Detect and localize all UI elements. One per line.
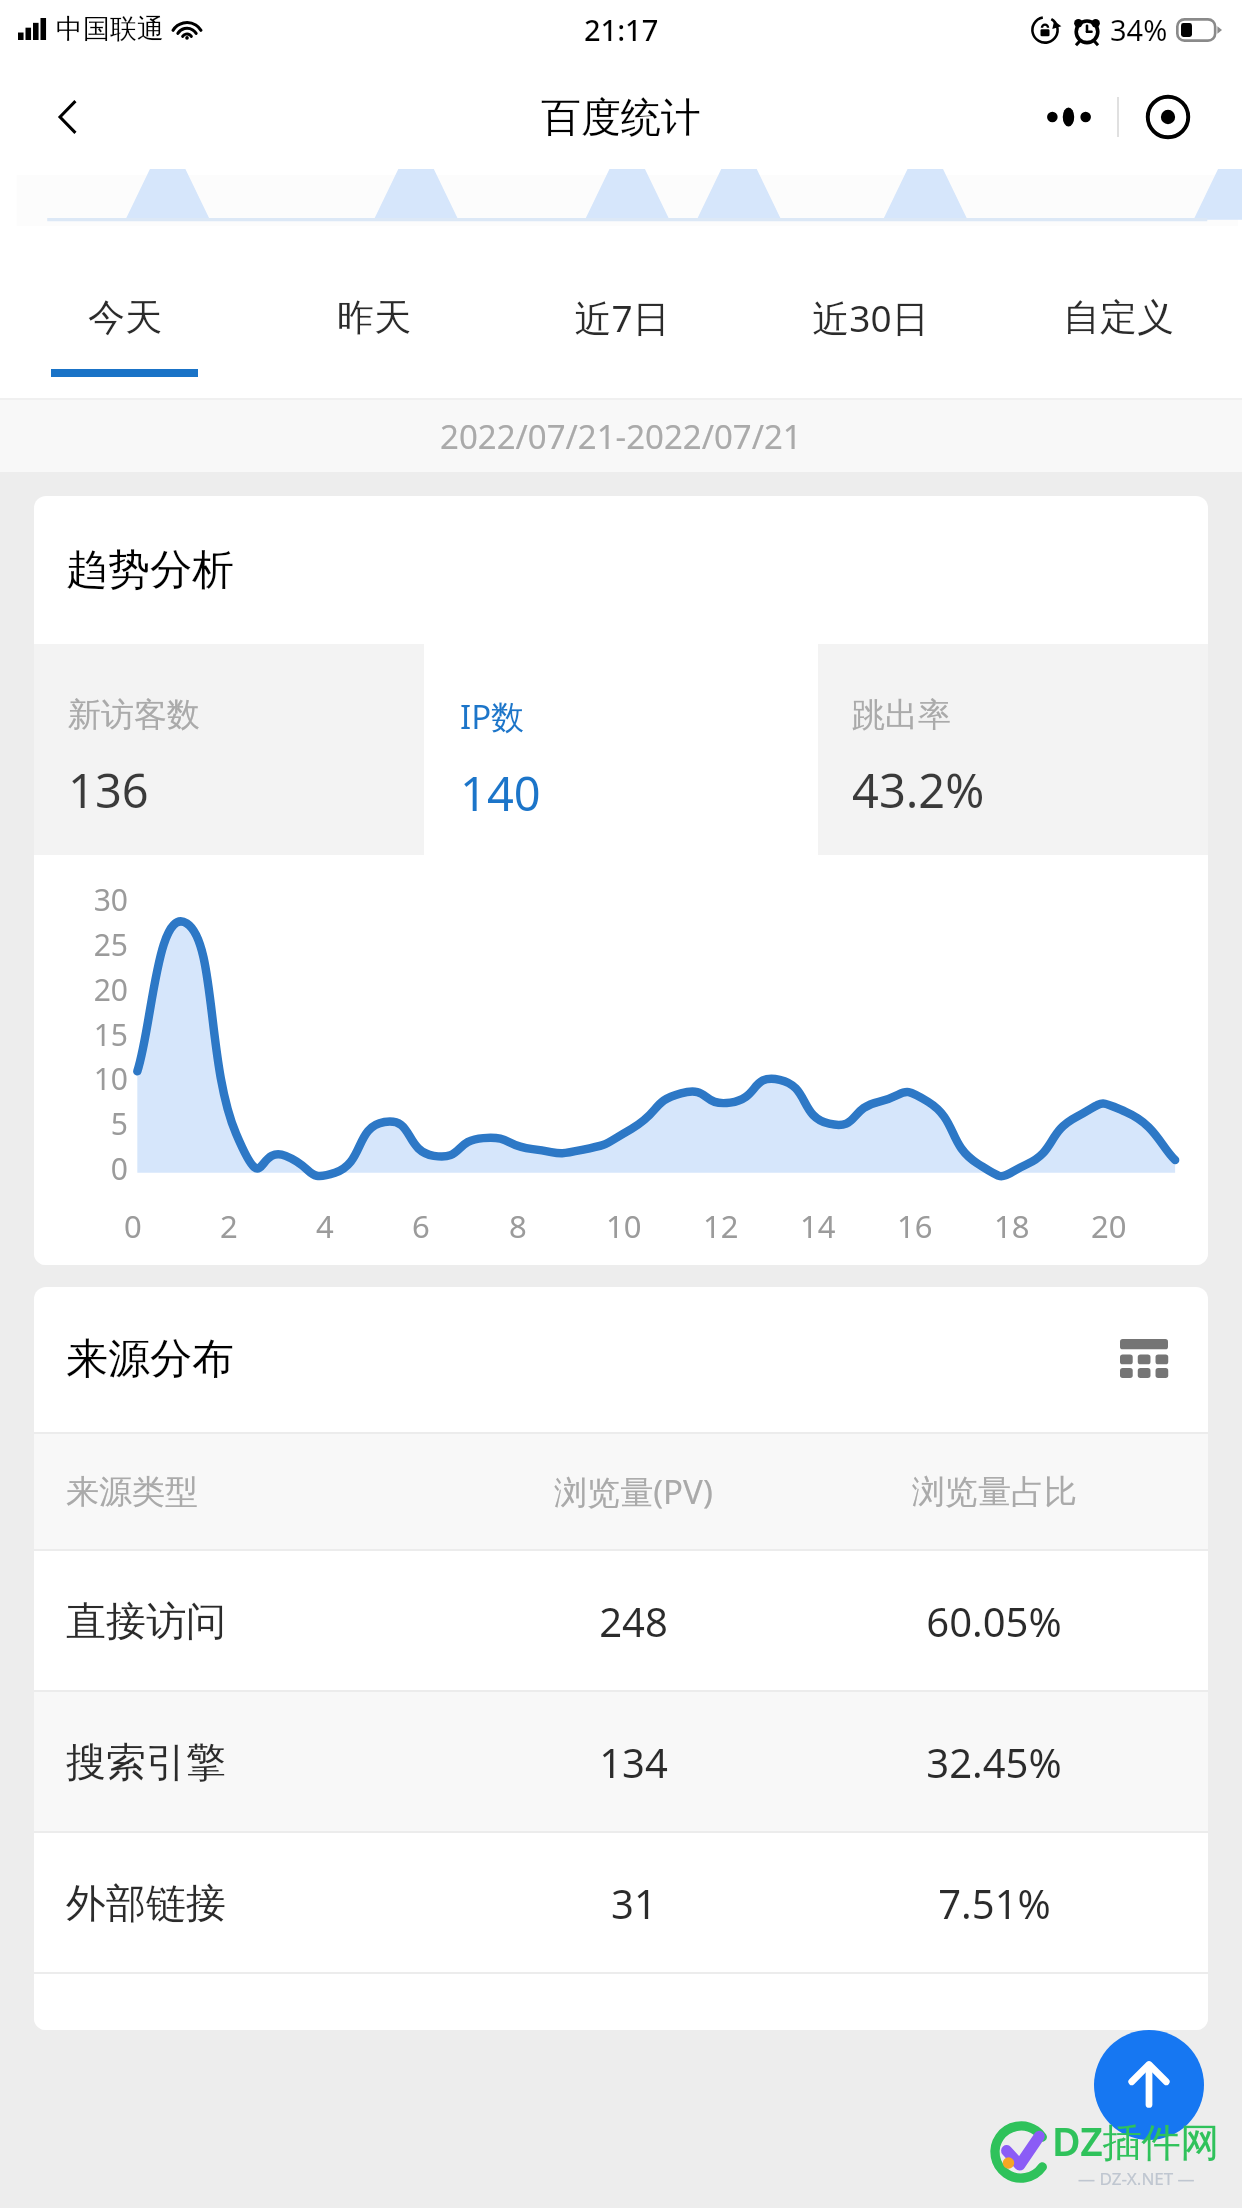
staticText: 5 bbox=[84, 1103, 128, 1144]
staticText: 8 bbox=[509, 1205, 527, 1247]
staticText: 来源分布 bbox=[66, 1333, 234, 1386]
button[interactable]: Close bbox=[1119, 80, 1216, 154]
button[interactable]: 近7日 bbox=[498, 235, 746, 400]
staticText: 中国联通 bbox=[56, 12, 164, 46]
button[interactable]: 新访客数 bbox=[34, 644, 424, 855]
button[interactable]: Scroll to top bbox=[1094, 2030, 1204, 2140]
staticText: 32.45% bbox=[926, 1735, 1062, 1789]
staticText: 外部链接 bbox=[66, 1878, 226, 1928]
staticText: 今天 bbox=[88, 294, 162, 341]
staticText: — DZ-X.NET — bbox=[1078, 2167, 1195, 2190]
button[interactable]: 今天 bbox=[0, 235, 249, 400]
staticText: 30 bbox=[84, 879, 128, 920]
staticText: 25 bbox=[84, 924, 128, 965]
staticText: 自定义 bbox=[1063, 294, 1174, 341]
staticText: 2022/07/21-2022/07/21 bbox=[440, 414, 802, 459]
staticText: 18 bbox=[994, 1205, 1030, 1247]
staticText: 20 bbox=[84, 969, 128, 1010]
staticText: 248 bbox=[599, 1594, 668, 1648]
staticText: 趋势分析 bbox=[66, 544, 234, 597]
staticText: 10 bbox=[84, 1058, 128, 1099]
button[interactable]: 直接访问 bbox=[34, 1551, 1208, 1690]
staticText: 12 bbox=[703, 1205, 739, 1247]
button[interactable]: 跳出率 bbox=[818, 644, 1208, 855]
staticText: 34% bbox=[1110, 10, 1168, 49]
button[interactable]: Back bbox=[30, 79, 106, 155]
staticText: 21:17 bbox=[584, 10, 659, 49]
staticText: 4 bbox=[316, 1205, 334, 1247]
staticText: 31 bbox=[611, 1876, 657, 1930]
staticText: 20 bbox=[1091, 1205, 1127, 1247]
staticText: 浏览量占比 bbox=[912, 1471, 1077, 1513]
button[interactable]: 昨天 bbox=[249, 235, 498, 400]
staticText: 15 bbox=[84, 1014, 128, 1055]
staticText: 10 bbox=[606, 1205, 642, 1247]
button[interactable]: 外部链接 bbox=[34, 1833, 1208, 1972]
staticText: 直接访问 bbox=[66, 1596, 226, 1646]
button[interactable]: 近30日 bbox=[746, 235, 994, 400]
staticText: 昨天 bbox=[337, 294, 411, 341]
staticText: 43.2% bbox=[852, 758, 985, 822]
staticText: 14 bbox=[800, 1205, 836, 1247]
staticText: 134 bbox=[599, 1735, 668, 1789]
staticText: 0 bbox=[84, 1148, 128, 1189]
staticText: 百度统计 bbox=[541, 92, 701, 142]
button[interactable]: IP数 bbox=[426, 644, 816, 855]
staticText: 7.51% bbox=[938, 1876, 1051, 1930]
staticText: 136 bbox=[68, 758, 149, 822]
staticText: 搜索引擎 bbox=[66, 1737, 226, 1787]
staticText: 近7日 bbox=[574, 292, 670, 343]
staticText: DZ插件网 bbox=[1052, 2114, 1220, 2167]
button[interactable]: Table view bbox=[1106, 1322, 1182, 1398]
staticText: 6 bbox=[412, 1205, 430, 1247]
staticText: 16 bbox=[897, 1205, 933, 1247]
staticText: 60.05% bbox=[926, 1594, 1062, 1648]
staticText: 近30日 bbox=[812, 292, 929, 343]
staticText: 2 bbox=[220, 1205, 238, 1247]
staticText: 新访客数 bbox=[68, 694, 200, 736]
button[interactable]: 来源类型 bbox=[34, 1434, 1208, 1549]
button[interactable]: 搜索引擎 bbox=[34, 1692, 1208, 1831]
staticText: 0 bbox=[124, 1205, 142, 1247]
staticText: 跳出率 bbox=[852, 694, 951, 736]
button[interactable]: More bbox=[1020, 80, 1117, 154]
staticText: IP数 bbox=[460, 694, 525, 739]
staticText: 浏览量(PV) bbox=[554, 1469, 713, 1514]
staticText: 来源类型 bbox=[66, 1471, 198, 1513]
staticText: 140 bbox=[460, 761, 541, 825]
button[interactable]: 自定义 bbox=[994, 235, 1242, 400]
